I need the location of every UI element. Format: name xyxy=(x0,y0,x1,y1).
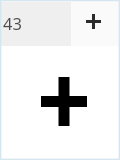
button[interactable]: Add item xyxy=(32,68,96,135)
button[interactable]: Add xyxy=(82,10,106,34)
button[interactable]: 43 xyxy=(0,2,71,46)
staticText: 43 xyxy=(3,12,22,34)
